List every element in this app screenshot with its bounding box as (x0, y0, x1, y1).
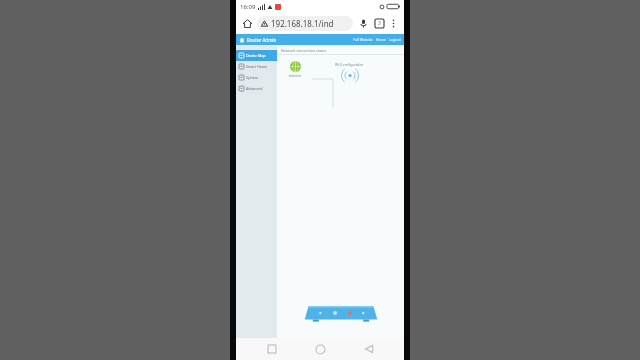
button[interactable]: Device Map (236, 50, 277, 61)
button[interactable]: System Information (236, 72, 277, 83)
button[interactable]: Advanced (236, 83, 277, 94)
button[interactable]: Home (241, 17, 254, 30)
button[interactable]: Recent apps (259, 338, 285, 360)
staticText: 3 (378, 20, 381, 27)
staticText: System Information (246, 75, 274, 80)
staticText: Device Map (246, 53, 266, 58)
staticText: Network connection status (281, 48, 327, 53)
staticText: Advanced (246, 86, 263, 91)
button[interactable]: Home (307, 338, 333, 360)
staticText: Wi-Fi configuration (335, 63, 364, 67)
button[interactable]: Logout (389, 37, 401, 42)
staticText: 16:09 (240, 3, 256, 11)
button[interactable]: 192.168.18.1/ind (257, 16, 353, 31)
staticText: Internet (289, 74, 302, 78)
button[interactable]: Home (376, 37, 386, 42)
staticText: Router Admin (247, 37, 277, 43)
staticText: Smart Home Management (246, 64, 274, 69)
button[interactable]: Full Website (353, 37, 373, 42)
button[interactable]: Smart Home Management (236, 61, 277, 72)
button[interactable]: Back (356, 338, 382, 360)
staticText: 192.168.18.1/ind (271, 18, 334, 29)
button[interactable]: Tabs (373, 17, 386, 30)
button[interactable]: Voice search (357, 17, 370, 30)
button[interactable]: More options (388, 18, 399, 29)
